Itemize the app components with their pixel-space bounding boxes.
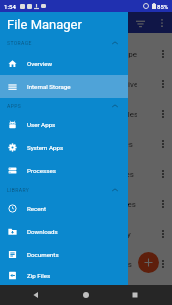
- staticText: Documents and sample files: [31, 260, 137, 269]
- staticText: Internal Storage: [27, 83, 71, 90]
- staticText: File Manager: [7, 17, 82, 32]
- button[interactable]: Item options: [155, 39, 171, 69]
- button[interactable]: Android system library archives: [0, 69, 172, 99]
- staticText: 1:54: [4, 3, 16, 10]
- staticText: System Apps: [27, 144, 64, 151]
- button[interactable]: Item options: [155, 99, 171, 129]
- button[interactable]: Internal Storage: [0, 75, 128, 98]
- button[interactable]: System Apps: [0, 136, 128, 159]
- staticText: Downloads: [27, 228, 58, 235]
- staticText: Android system library archives: [31, 80, 137, 89]
- button[interactable]: More options: [152, 13, 172, 33]
- staticText: User Apps: [27, 121, 56, 128]
- button[interactable]: Movies and video media files: [0, 159, 172, 189]
- button[interactable]: Documents and sample files: [0, 249, 172, 279]
- staticText: Notifications and alarm tones: [31, 200, 137, 209]
- button[interactable]: Item options: [155, 219, 171, 249]
- staticText: Compressed zip archive files: [31, 140, 137, 149]
- staticText: Movies and video media files: [31, 170, 137, 179]
- staticText: File Manager: [30, 15, 105, 30]
- button[interactable]: Sort: [128, 13, 152, 33]
- staticText: Overview: [27, 60, 53, 67]
- button[interactable]: Item options: [155, 159, 171, 189]
- staticText: APPS: [7, 103, 22, 109]
- button[interactable]: Storage data folder property: [0, 219, 172, 249]
- button[interactable]: Item options: [155, 249, 171, 279]
- button[interactable]: Close drawer: [0, 12, 172, 285]
- button[interactable]: Zip Files: [0, 266, 128, 285]
- staticText: Storage data folder property: [31, 230, 137, 239]
- button[interactable]: APPS: [0, 98, 128, 113]
- button[interactable]: Item options: [155, 189, 171, 219]
- button[interactable]: Menu: [8, 15, 24, 31]
- button[interactable]: Recent: [0, 197, 128, 220]
- button[interactable]: Music and sound folder property: [0, 39, 172, 69]
- button[interactable]: Item options: [155, 129, 171, 159]
- button[interactable]: Documents: [0, 243, 128, 266]
- button[interactable]: Overview: [0, 52, 128, 75]
- staticText: Documents: [27, 251, 59, 258]
- staticText: Processes: [27, 167, 56, 174]
- button[interactable]: LIBRARY: [0, 182, 128, 197]
- button[interactable]: Add: [138, 252, 159, 273]
- button[interactable]: Compressed zip archive files: [0, 129, 172, 159]
- staticText: Zip Files: [27, 272, 51, 279]
- staticText: STORAGE: [7, 40, 32, 46]
- button[interactable]: Downloaded pictures and files: [0, 99, 172, 129]
- button[interactable]: Processes: [0, 159, 128, 182]
- staticText: LIBRARY: [7, 187, 30, 193]
- staticText: Music and sound folder property: [31, 50, 137, 59]
- staticText: Downloaded pictures and files: [31, 110, 137, 119]
- button[interactable]: Notifications and alarm tones: [0, 189, 172, 219]
- button[interactable]: STORAGE: [0, 33, 128, 52]
- button[interactable]: Downloads: [0, 220, 128, 243]
- button[interactable]: User Apps: [0, 113, 128, 136]
- staticText: 85%: [157, 3, 169, 10]
- staticText: Recent: [27, 205, 47, 212]
- button[interactable]: Item options: [155, 69, 171, 99]
